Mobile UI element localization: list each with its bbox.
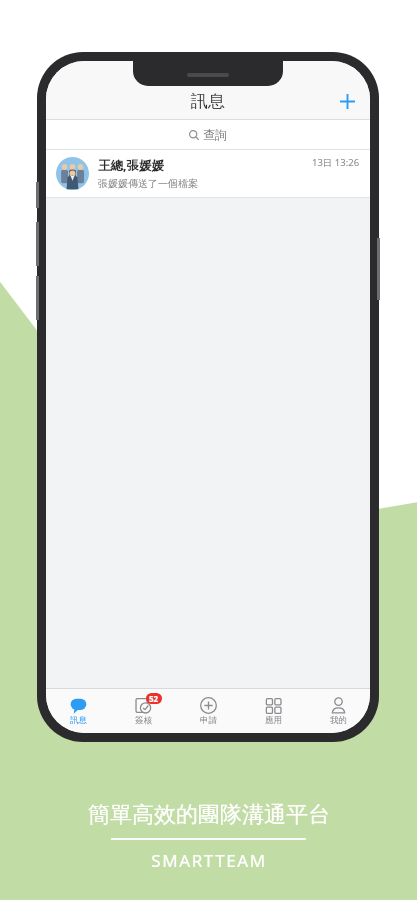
staticText: 申請 xyxy=(200,715,217,726)
button[interactable]: 申請 xyxy=(175,689,240,733)
button[interactable]: 查詢 xyxy=(46,120,370,149)
staticText: 張媛媛傳送了一個檔案 xyxy=(98,177,198,190)
staticText: 13日 13:26 xyxy=(312,156,360,169)
staticText: 王總,張媛媛 xyxy=(98,157,165,174)
button[interactable]: 應用 xyxy=(240,689,305,733)
staticText: 查詢 xyxy=(203,127,227,142)
staticText: 52 xyxy=(149,693,159,704)
staticText: 訊息 xyxy=(70,715,87,726)
button[interactable]: 訊息 xyxy=(46,689,110,733)
button[interactable]: New message xyxy=(332,86,362,116)
staticText: SMARTTEAM xyxy=(151,849,267,872)
staticText: 訊息 xyxy=(191,91,225,112)
button[interactable]: 王總,張媛媛 xyxy=(46,150,370,197)
button[interactable]: 我的 xyxy=(305,689,370,733)
staticText: 簡單高效的團隊溝通平台 xyxy=(88,801,330,829)
staticText: 我的 xyxy=(330,715,347,726)
button[interactable]: 52 xyxy=(110,689,175,733)
staticText: 應用 xyxy=(265,715,282,726)
staticText: 簽核 xyxy=(135,715,152,726)
